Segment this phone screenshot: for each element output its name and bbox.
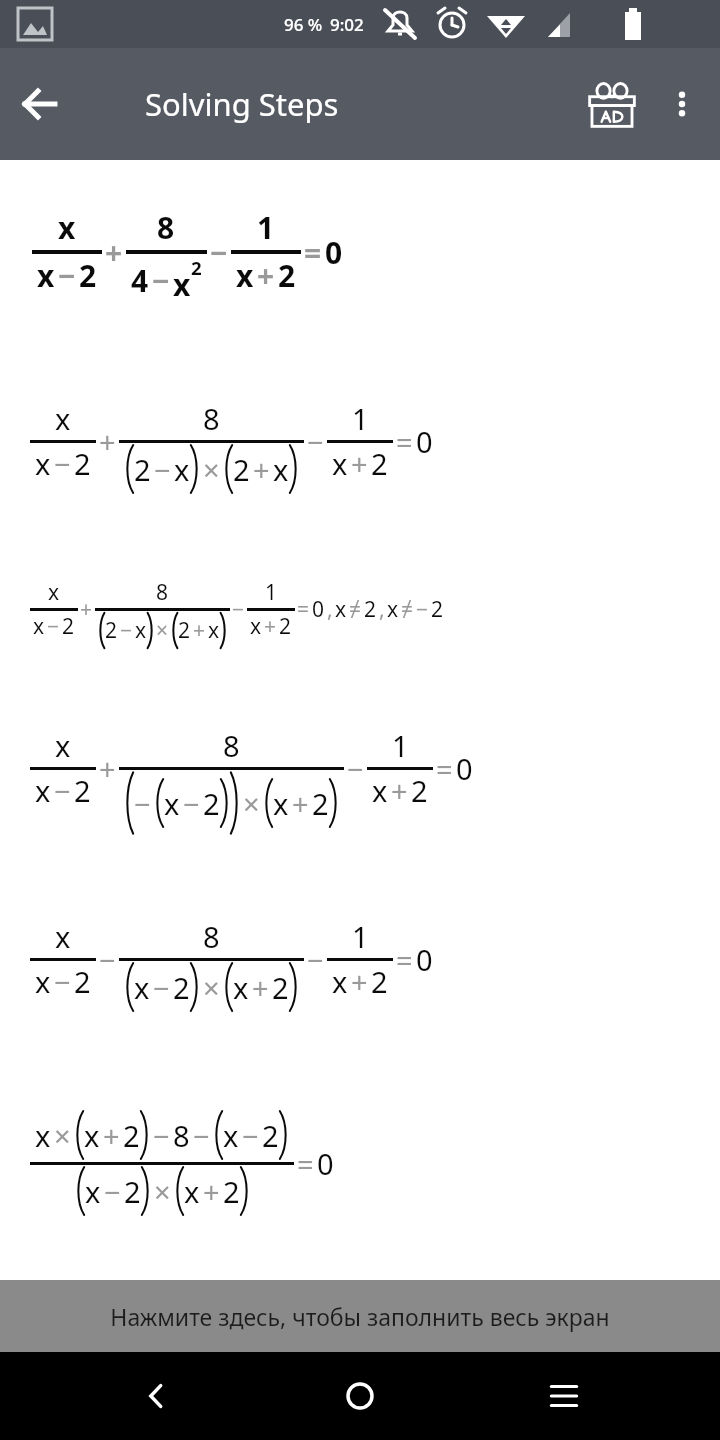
staticText: 2	[134, 450, 151, 489]
staticText: −	[134, 784, 151, 823]
staticText: ,	[327, 595, 333, 624]
button[interactable]: Home	[312, 1352, 408, 1440]
staticText: 2	[203, 784, 220, 823]
staticText: 0	[325, 232, 343, 273]
staticText: 1	[352, 917, 369, 956]
staticText: −	[154, 450, 171, 489]
staticText: 2	[431, 595, 444, 624]
staticText: 2	[79, 255, 97, 296]
staticText: 2	[105, 616, 118, 645]
staticText: −	[210, 232, 228, 273]
staticText: 2	[262, 1116, 279, 1155]
staticText: x	[37, 255, 55, 296]
staticText: 2	[364, 595, 377, 624]
staticText: =	[436, 749, 453, 788]
staticText: 9:02	[330, 13, 364, 36]
staticText: −	[54, 771, 71, 810]
staticText: 0	[312, 595, 325, 624]
staticText: ×	[156, 616, 169, 645]
staticText: +	[80, 595, 93, 624]
staticText: x	[184, 1172, 200, 1211]
staticText: Нажмите здесь, чтобы заполнить весь экра…	[110, 1301, 610, 1332]
staticText: x	[174, 450, 190, 489]
staticText: =	[396, 940, 413, 979]
staticText: x	[332, 444, 348, 483]
staticText: x	[233, 968, 249, 1007]
staticText: 0	[456, 749, 473, 788]
staticText: 8	[156, 578, 169, 607]
staticText: ×	[203, 450, 220, 489]
staticText: =	[297, 1144, 314, 1183]
staticText: x	[372, 771, 388, 810]
staticText: =	[297, 595, 310, 624]
staticText: x	[273, 450, 289, 489]
staticText: 1	[257, 207, 275, 248]
staticText: +	[193, 616, 206, 645]
staticText: 1	[265, 578, 278, 607]
staticText: 2	[278, 255, 296, 296]
button[interactable]: Нажмите здесь, чтобы заполнить весь экра…	[0, 1280, 720, 1352]
staticText: ,	[379, 595, 385, 624]
staticText: +	[203, 1172, 220, 1211]
staticText: 0	[317, 1144, 334, 1183]
staticText: 2	[312, 784, 329, 823]
staticText: −	[183, 784, 200, 823]
staticText: =	[396, 422, 413, 461]
staticText: 2	[123, 1116, 140, 1155]
button[interactable]: Recent apps	[516, 1352, 612, 1440]
staticText: 2	[74, 962, 91, 1001]
staticText: 2	[124, 1172, 141, 1211]
staticText: x	[55, 917, 71, 956]
staticText: x	[332, 962, 348, 1001]
staticText: x	[173, 264, 191, 305]
staticText: x	[84, 1116, 100, 1155]
staticText: −	[307, 422, 324, 461]
staticText: 8	[223, 726, 240, 765]
button[interactable]: Watch ad	[578, 70, 646, 138]
staticText: ≠	[349, 595, 362, 624]
staticText: −	[232, 595, 245, 624]
staticText: +	[264, 612, 277, 641]
staticText: ×	[203, 968, 220, 1007]
staticText: +	[351, 962, 368, 1001]
staticText: −	[242, 1116, 259, 1155]
button[interactable]: Back	[12, 76, 68, 132]
staticText: x	[164, 784, 180, 823]
staticText: 2	[223, 1172, 240, 1211]
staticText: 2	[178, 616, 191, 645]
staticText: x	[55, 726, 71, 765]
staticText: 2	[411, 771, 428, 810]
staticText: x	[135, 616, 147, 645]
staticText: x	[250, 612, 262, 641]
staticText: x	[35, 1116, 51, 1155]
staticText: x	[58, 207, 76, 248]
staticText: +	[99, 749, 116, 788]
staticText: −	[99, 940, 116, 979]
staticText: 96 %	[284, 13, 323, 36]
staticText: +	[252, 968, 269, 1007]
staticText: +	[391, 771, 408, 810]
staticText: Solving Steps	[145, 83, 339, 125]
staticText: 4	[131, 260, 149, 301]
staticText: 0	[416, 940, 433, 979]
staticText: x	[35, 962, 51, 1001]
staticText: ×	[54, 1116, 71, 1155]
staticText: x	[387, 595, 399, 624]
staticText: x	[236, 255, 254, 296]
button[interactable]: Back	[108, 1352, 204, 1440]
staticText: 2	[272, 968, 289, 1007]
staticText: 2	[74, 771, 91, 810]
staticText: 1	[392, 726, 409, 765]
button[interactable]: More options	[652, 74, 712, 134]
staticText: 8	[203, 917, 220, 956]
staticText: ×	[243, 784, 260, 823]
staticText: 2	[62, 612, 75, 641]
staticText: −	[153, 968, 170, 1007]
staticText: ×	[154, 1172, 171, 1211]
staticText: +	[351, 444, 368, 483]
staticText: x	[55, 399, 71, 438]
staticText: x	[35, 444, 51, 483]
staticText: 2	[74, 444, 91, 483]
staticText: −	[47, 612, 60, 641]
staticText: −	[152, 260, 170, 301]
